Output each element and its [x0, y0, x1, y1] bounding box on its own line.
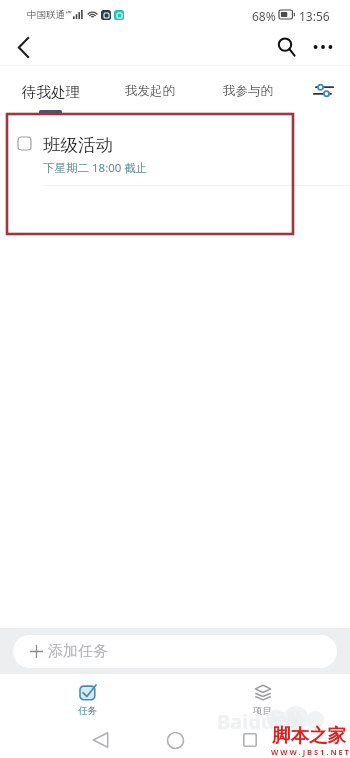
- staticText: 任务: [78, 705, 97, 717]
- button[interactable]: More options: [305, 29, 341, 65]
- button[interactable]: Complete task: [18, 137, 31, 150]
- staticText: 68%: [252, 8, 276, 21]
- button[interactable]: 任务: [0, 674, 175, 722]
- staticText: Baidu: [217, 708, 274, 735]
- staticText: 待我处理: [22, 83, 80, 101]
- button[interactable]: Home: [153, 727, 197, 753]
- button[interactable]: 项目: [175, 674, 350, 722]
- button[interactable]: Back: [78, 727, 122, 753]
- staticText: 班级活动: [43, 134, 113, 156]
- staticText: 项目: [253, 705, 272, 717]
- staticText: 中国联通: [27, 9, 65, 21]
- button[interactable]: 我发起的: [101, 66, 199, 114]
- staticText: 我参与的: [223, 83, 273, 99]
- staticText: W W W . J B S 1 . N E T: [271, 747, 349, 757]
- staticText: 添加任务: [48, 642, 108, 661]
- staticText: “”: [66, 9, 72, 20]
- staticText: 经验: [270, 710, 304, 731]
- button[interactable]: Filter: [297, 66, 350, 114]
- button[interactable]: 我参与的: [199, 66, 297, 114]
- staticText: 13:56: [299, 8, 330, 21]
- staticText: 我发起的: [125, 83, 175, 99]
- button[interactable]: 待我处理: [0, 66, 101, 114]
- button[interactable]: Back: [5, 29, 41, 65]
- staticText: 脚本之家: [272, 724, 346, 747]
- button[interactable]: Complete task: [0, 114, 350, 186]
- button[interactable]: Recents: [228, 727, 272, 753]
- button[interactable]: 添加任务: [13, 635, 337, 668]
- staticText: 下星期二 18:00 截止: [43, 160, 148, 176]
- button[interactable]: Search: [269, 29, 305, 65]
